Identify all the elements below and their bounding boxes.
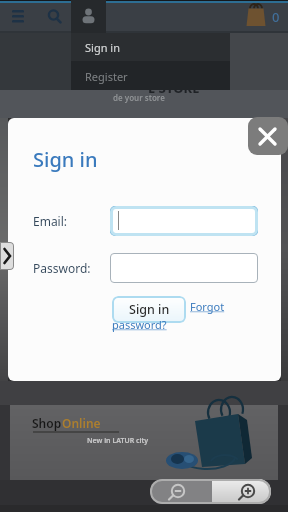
button[interactable]: Sign in	[112, 296, 186, 323]
button[interactable]	[110, 253, 258, 283]
button[interactable]: password?	[112, 317, 167, 332]
button[interactable]	[110, 206, 258, 236]
button[interactable]: Forgot	[190, 299, 225, 314]
staticText: Register	[85, 69, 128, 84]
button[interactable]	[0, 242, 14, 270]
staticText: New in LATUR city	[87, 436, 149, 446]
staticText: de your store	[113, 92, 165, 103]
button[interactable]	[71, 0, 106, 33]
button[interactable]: Sign in	[71, 33, 230, 61]
staticText: Password:	[33, 260, 91, 276]
button[interactable]: Register	[71, 61, 230, 90]
staticText: Shop	[32, 415, 62, 431]
button[interactable]	[212, 479, 271, 504]
button[interactable]	[150, 479, 212, 504]
staticText: Sign in	[33, 146, 98, 173]
staticText: 0	[272, 8, 280, 26]
button[interactable]	[8, 3, 44, 31]
staticText: E STORE	[148, 79, 200, 97]
staticText: Online	[62, 415, 101, 431]
button[interactable]	[242, 2, 272, 32]
staticText: Sign in	[129, 301, 170, 318]
staticText: Sign in	[85, 40, 120, 55]
staticText: Email:	[33, 213, 68, 229]
button[interactable]	[42, 3, 70, 31]
button[interactable]	[248, 117, 288, 155]
